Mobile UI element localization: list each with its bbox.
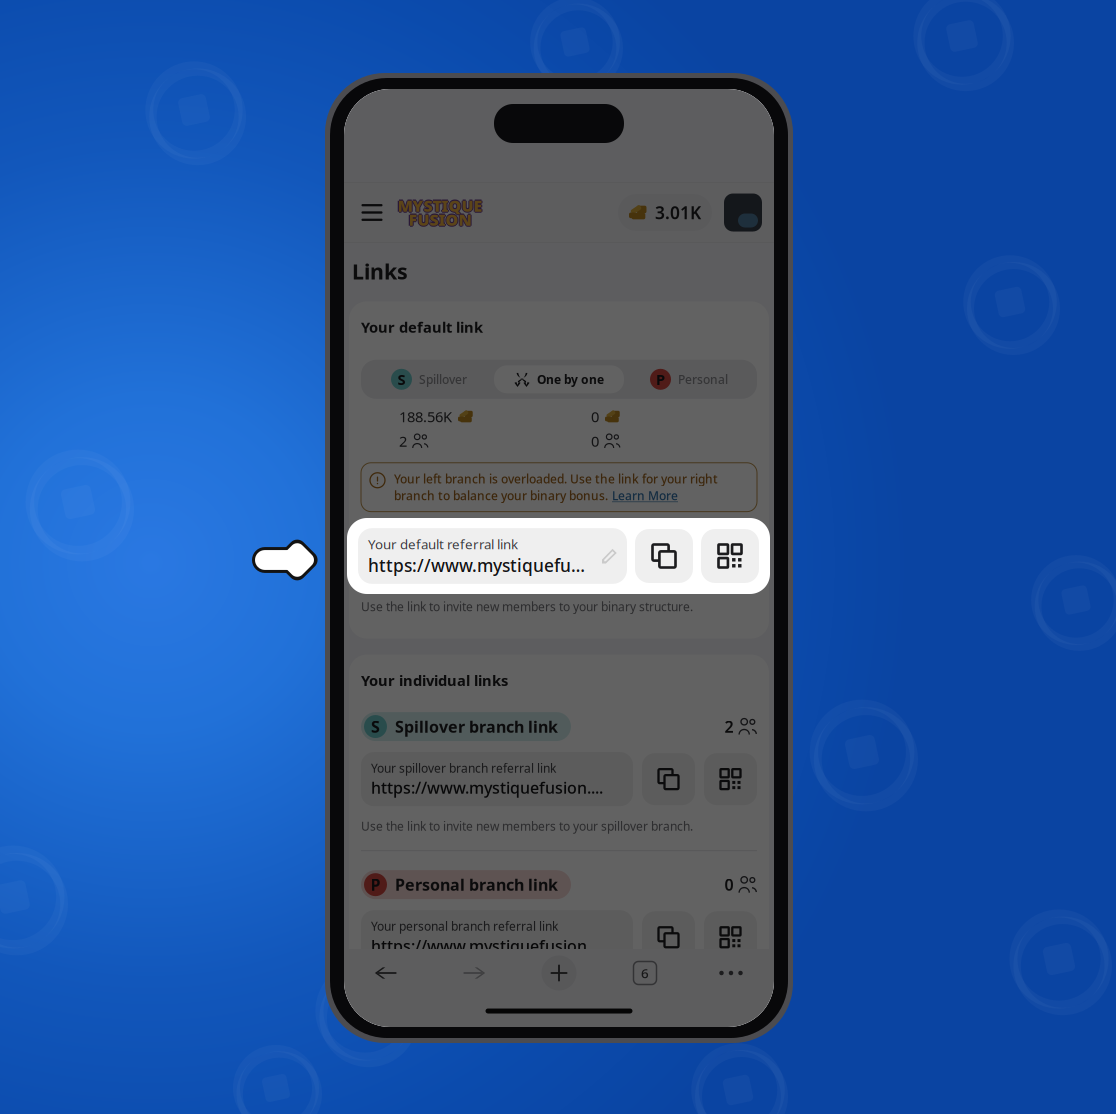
button[interactable]: S [364,363,494,396]
staticText: 0 [591,431,599,451]
button[interactable]: Learn More [612,488,678,504]
staticText: Spillover [419,371,467,387]
staticText: S [397,370,405,389]
staticText: 0 [724,874,733,895]
staticText: 2 [399,431,407,451]
button[interactable]: P [624,363,754,396]
staticText: FUSION [407,209,470,230]
staticText: FUSION [408,210,471,231]
staticText: Your default link [361,317,483,337]
staticText: Your personal branch referral link [371,918,558,934]
button[interactable]: Show QR code [704,911,757,963]
staticText: P [656,370,665,389]
staticText: Learn More [612,488,678,504]
staticText: MYSTIQUE [397,196,482,217]
button[interactable]: 3.01K [618,194,712,231]
button[interactable]: Mystique Fusion home [396,194,484,230]
staticText: MYSTIQUE [397,194,482,215]
button[interactable]: More [688,971,774,975]
staticText: Your individual links [361,671,508,690]
staticText: Personal branch link [395,874,558,895]
staticText: MYSTIQUE [396,195,481,216]
button[interactable]: Copy link [642,753,695,805]
staticText: 0 [591,407,599,426]
staticText: 2 [724,716,733,737]
button[interactable]: Profile [724,193,762,231]
staticText: branch to balance your binary bonus. [394,488,608,504]
staticText: Your spillover branch referral link [371,760,556,776]
staticText: Your default referral link [368,535,518,553]
staticText: P [370,874,380,895]
button[interactable]: Forward [430,962,516,983]
staticText: FUSION [408,208,471,229]
staticText: Links [352,257,408,285]
button[interactable]: Tabs [602,961,688,984]
button[interactable]: P [361,870,571,899]
staticText: One by one [537,371,604,387]
button[interactable]: New Tab [516,955,602,990]
button[interactable]: One by one [494,365,624,393]
staticText: S [371,716,380,737]
staticText: 3.01K [655,201,701,224]
button[interactable]: S [361,712,571,741]
staticText: FUSION [408,209,471,230]
staticText: FUSION [410,209,473,230]
staticText: MYSTIQUE [399,195,484,216]
button[interactable]: Copy link [635,529,693,583]
staticText: https://www.mystiquefusion.... [371,935,603,956]
staticText: Spillover branch link [395,716,558,737]
button[interactable]: Show QR code [704,753,757,805]
staticText: MYSTIQUE [397,195,482,216]
button[interactable]: Back [344,962,430,983]
button[interactable]: Menu [356,196,388,228]
staticText: Your left branch is overloaded. Use the … [394,471,718,487]
button[interactable]: Show QR code [701,529,759,583]
staticText: 6 [641,964,649,982]
staticText: Use the link to invite new members to yo… [361,818,693,834]
button[interactable]: Copy link [642,911,695,963]
staticText: https://www.mystiquefu… [368,554,585,577]
staticText: https://www.mystiquefusion.... [371,777,603,798]
staticText: Personal [678,371,728,387]
staticText: Use the link to invite new members to yo… [361,599,693,614]
staticText: 188.56K [399,407,452,426]
